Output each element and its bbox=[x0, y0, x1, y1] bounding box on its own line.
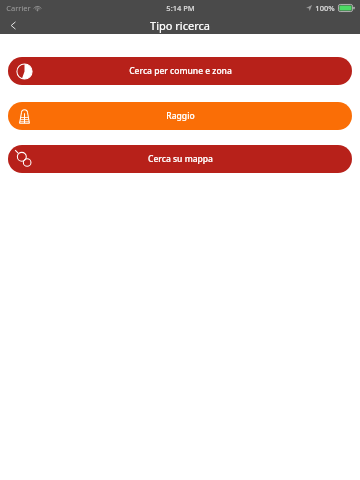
staticText: 5:14 PM bbox=[166, 3, 195, 13]
button[interactable]: Back bbox=[0, 16, 26, 34]
staticText: Carrier bbox=[6, 3, 31, 13]
staticText: 100% bbox=[315, 3, 335, 13]
staticText: Cerca su mappa bbox=[148, 153, 213, 165]
other: Cerca per comune e zona bbox=[15, 62, 34, 81]
other: Cerca su mappa bbox=[15, 150, 34, 169]
staticText: Tipo ricerca bbox=[150, 18, 210, 33]
staticText: Raggio bbox=[166, 110, 195, 122]
button[interactable]: Cerca su mappa bbox=[8, 145, 352, 173]
button[interactable]: Cerca per comune e zona bbox=[8, 57, 352, 85]
other: Raggio bbox=[15, 107, 34, 126]
button[interactable]: Raggio bbox=[8, 102, 352, 130]
staticText: Cerca per comune e zona bbox=[129, 65, 232, 77]
